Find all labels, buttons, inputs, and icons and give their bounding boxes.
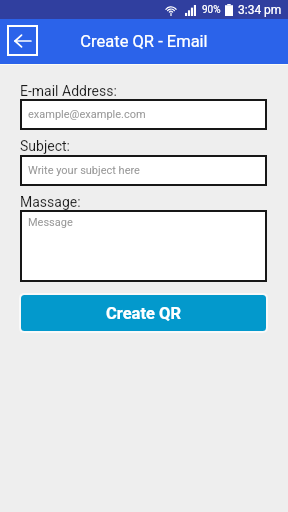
staticText: 3:34 pm [238,3,282,17]
staticText: Create QR [106,304,181,323]
staticText: Massage: [20,194,81,210]
button[interactable]: Write your subject here [20,155,267,186]
button[interactable]: Back [7,25,38,56]
staticText: 90% [202,4,221,16]
button[interactable]: Message [20,210,267,282]
staticText: Message [28,216,73,229]
staticText: E-mail Address: [20,83,117,99]
staticText: example@example.com [28,108,146,121]
button[interactable]: Create QR [21,295,266,331]
staticText: Write your subject here [28,164,140,177]
staticText: Create QR - Email [80,32,208,51]
button[interactable]: example@example.com [20,99,267,130]
staticText: Subject: [20,138,70,154]
